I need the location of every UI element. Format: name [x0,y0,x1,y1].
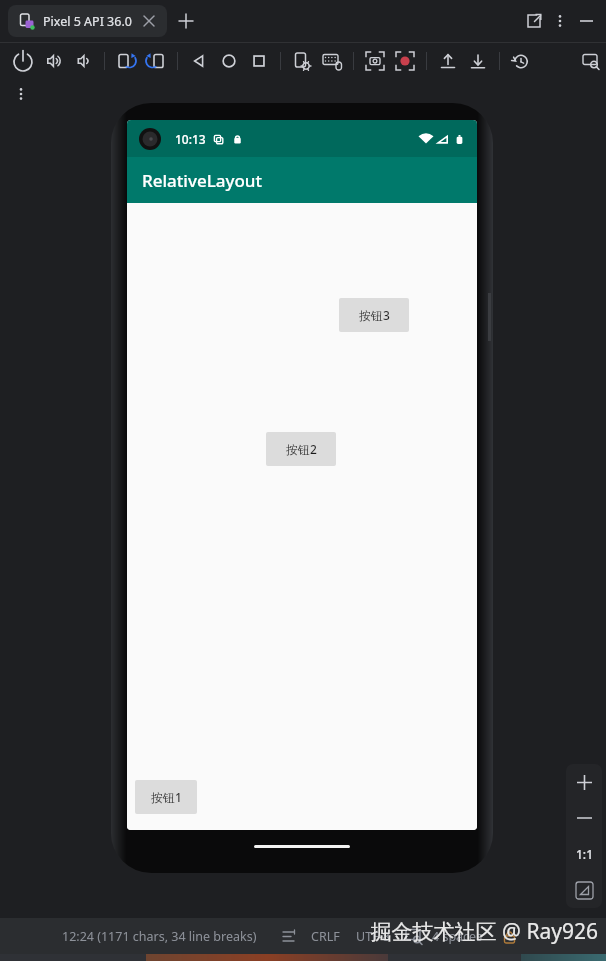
button[interactable]: 按钮2 [266,432,336,466]
staticText: CRLF [311,928,340,945]
button[interactable]: New tab [173,8,199,34]
button[interactable]: Close tab [141,13,157,29]
button[interactable]: 1:1 [566,836,602,872]
button[interactable]: Overview [244,46,274,76]
staticText: 按钮1 [151,789,182,805]
button[interactable]: Inspections [404,926,424,946]
button[interactable]: Download file [463,46,493,76]
button[interactable]: More toolbar actions [8,81,34,107]
staticText: UTF-8 [356,928,390,945]
staticText: 按钮3 [359,307,390,323]
button[interactable]: History [506,46,536,76]
button[interactable]: Line separator [279,926,299,946]
button[interactable]: Rotate left [111,46,141,76]
staticText: 按钮2 [286,441,317,457]
button[interactable]: Keyboard and mouse [317,46,347,76]
button[interactable]: Take screenshot [360,46,390,76]
button[interactable]: Lock [499,926,519,946]
button[interactable]: Zoom to fit [566,872,602,908]
button[interactable]: 按钮1 [135,780,197,814]
button[interactable]: Inspect UI [576,46,606,76]
button[interactable]: More options [548,9,572,33]
staticText: 12:24 (1171 chars, 34 line breaks) [62,928,257,945]
staticText: 4 spaces [432,928,483,945]
button[interactable]: Back [184,46,214,76]
button[interactable]: Home [214,46,244,76]
button[interactable]: Record screen [390,46,420,76]
button[interactable]: Open in separate window [520,7,548,35]
button[interactable]: Volume down [68,46,98,76]
button[interactable]: 按钮3 [339,298,409,332]
button[interactable]: Device settings [287,46,317,76]
button[interactable]: Zoom out [566,800,602,836]
button[interactable]: Rotate right [141,46,171,76]
staticText: Pixel 5 API 36.0 [43,13,132,30]
staticText: RelativeLayout [142,169,262,192]
button[interactable]: Zoom in [566,764,602,800]
button[interactable]: Minimize [572,7,600,35]
staticText: 掘金技术社区 @ Ray926 [370,917,598,946]
button[interactable]: Volume up [38,46,68,76]
button[interactable]: Upload file [433,46,463,76]
staticText: 10:13 [175,131,206,147]
button[interactable]: Power [8,46,38,76]
staticText: 1:1 [576,846,593,862]
button[interactable]: Pixel 5 API 36.0 [8,5,167,37]
